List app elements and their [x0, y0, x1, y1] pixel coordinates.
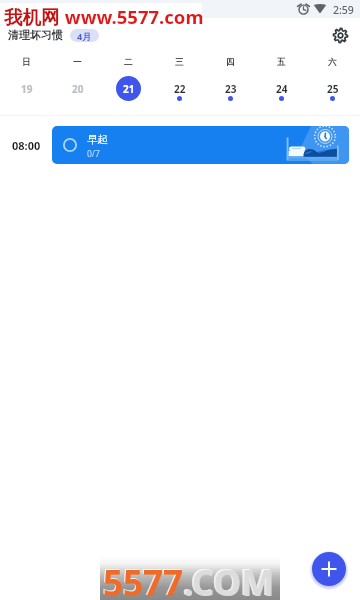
staticText: 二: [124, 57, 133, 68]
button[interactable]: 21: [116, 76, 141, 101]
staticText: 六: [328, 57, 337, 68]
staticText: 4月: [77, 30, 92, 42]
button[interactable]: 19: [14, 76, 39, 101]
staticText: 24: [276, 82, 288, 96]
staticText: 四: [226, 57, 235, 68]
staticText: 五: [277, 57, 286, 68]
staticText: 25: [327, 82, 339, 96]
button[interactable]: 23: [218, 76, 243, 101]
button[interactable]: 22: [167, 76, 192, 101]
staticText: 08:00: [12, 138, 41, 153]
staticText: 22: [174, 82, 186, 96]
button[interactable]: 24: [269, 76, 294, 101]
button[interactable]: 早起: [52, 126, 349, 164]
staticText: 19: [21, 82, 33, 96]
button[interactable]: 20: [65, 76, 90, 101]
staticText: 早起: [87, 133, 108, 146]
staticText: 一: [73, 57, 82, 68]
staticText: 日: [22, 57, 31, 68]
button[interactable]: Add habit: [312, 552, 346, 586]
staticText: 清理坏习惯: [8, 28, 63, 42]
staticText: .COM: [184, 559, 275, 600]
staticText: 0/7: [87, 148, 100, 160]
staticText: 我机网: [4, 6, 60, 29]
staticText: 三: [175, 57, 184, 68]
staticText: 21: [123, 82, 135, 96]
button[interactable]: 25: [320, 76, 345, 101]
staticText: 5577: [103, 559, 184, 600]
staticText: 23: [225, 82, 237, 96]
staticText: 5577.COM: [102, 558, 273, 600]
button[interactable]: 4月: [70, 29, 99, 42]
button[interactable]: Settings: [330, 25, 351, 46]
staticText: 20: [72, 82, 84, 96]
staticText: 2:59: [333, 3, 354, 17]
staticText: www.5577.com: [60, 4, 204, 29]
